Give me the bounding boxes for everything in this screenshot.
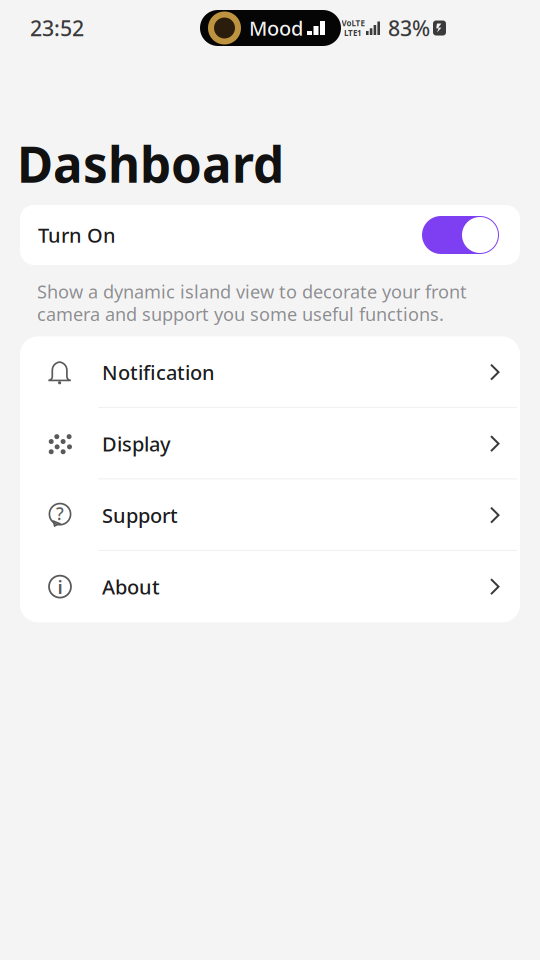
- staticText: VoLTE: [341, 18, 364, 28]
- button[interactable]: Turn On: [20, 205, 520, 265]
- button[interactable]: i: [20, 551, 520, 622]
- staticText: About: [102, 573, 160, 600]
- staticText: Dashboard: [17, 131, 284, 196]
- staticText: Show a dynamic island view to decorate y…: [37, 279, 467, 304]
- staticText: Turn On: [38, 222, 116, 248]
- staticText: Mood: [249, 15, 303, 41]
- button[interactable]: Notification: [20, 336, 520, 408]
- staticText: Display: [102, 430, 171, 457]
- staticText: 83%: [388, 14, 430, 42]
- staticText: 23:52: [30, 14, 84, 42]
- staticText: ?: [56, 502, 64, 525]
- staticText: i: [57, 574, 62, 599]
- button[interactable]: Display: [20, 408, 520, 479]
- staticText: Notification: [102, 359, 215, 385]
- staticText: camera and support you some useful funct…: [37, 302, 444, 326]
- button[interactable]: ?: [20, 479, 520, 551]
- staticText: Support: [102, 502, 178, 528]
- staticText: LTE1: [344, 27, 362, 38]
